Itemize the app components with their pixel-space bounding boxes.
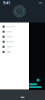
button[interactable]: Analytics xyxy=(0,29,29,34)
staticText: Projects xyxy=(6,36,12,38)
button[interactable]: Projects xyxy=(0,34,29,39)
staticText: Analytics xyxy=(6,31,12,33)
staticText: ▮▮▮ xyxy=(39,2,42,3)
staticText: 9:41 xyxy=(3,0,10,5)
staticText: Calendar xyxy=(6,46,13,48)
button[interactable]: Messages xyxy=(0,39,29,44)
staticText: Messages xyxy=(6,41,14,43)
button[interactable]: Profile xyxy=(13,5,26,18)
button[interactable]: Dashboard xyxy=(0,24,29,29)
button[interactable]: Calendar xyxy=(0,44,29,49)
staticText: Settings xyxy=(6,51,11,53)
button[interactable]: Settings xyxy=(0,49,29,54)
staticText: Dashboard xyxy=(6,26,15,27)
